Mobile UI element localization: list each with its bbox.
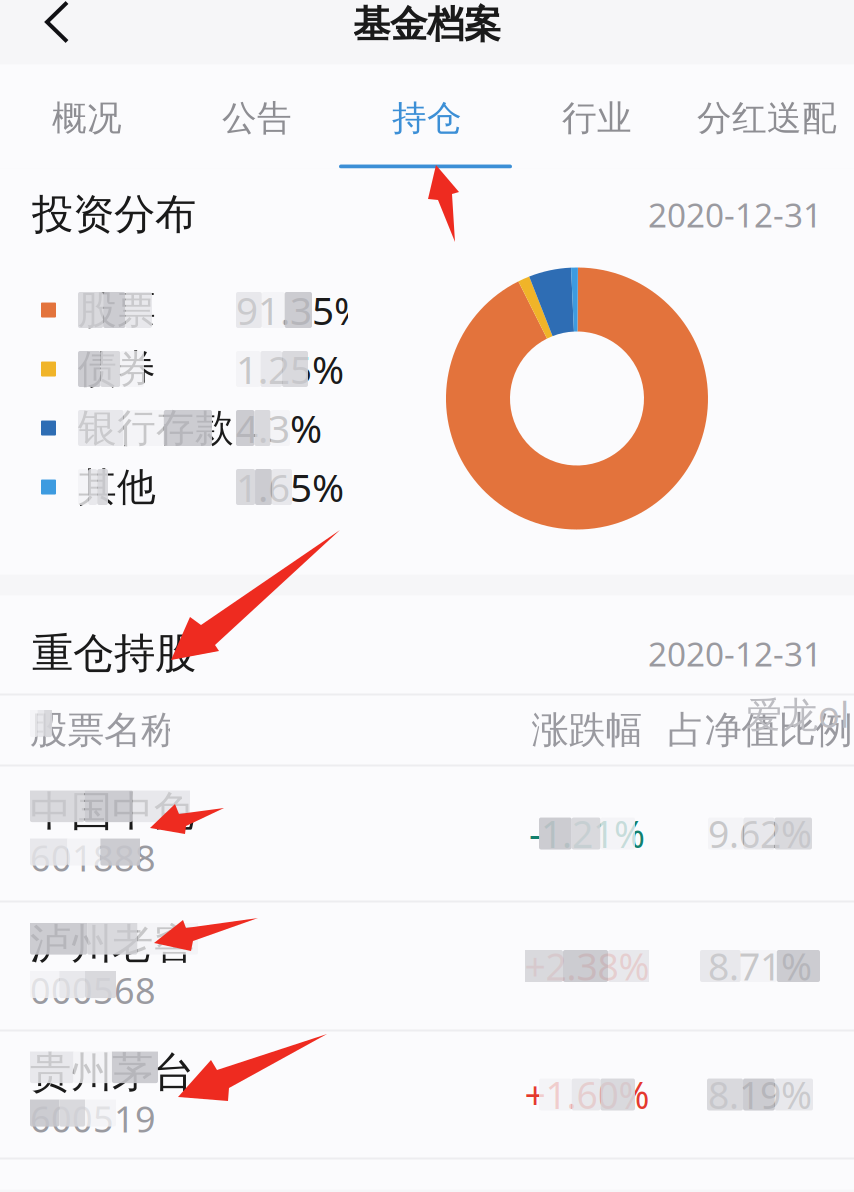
staticText: +2.38% bbox=[524, 941, 649, 991]
button[interactable]: 分红送配 bbox=[682, 64, 852, 168]
staticText: 概况 bbox=[52, 97, 122, 139]
staticText: 占净值比例 bbox=[667, 707, 852, 753]
staticText: 4.3% bbox=[236, 402, 322, 454]
staticText: 股票名称 bbox=[30, 707, 178, 753]
staticText: 债券 bbox=[78, 345, 156, 393]
staticText: 000568 bbox=[30, 966, 156, 1014]
button[interactable]: 中国中免 bbox=[0, 766, 854, 902]
button[interactable]: 泸州老窖 bbox=[0, 902, 854, 1031]
staticText: 8.19% bbox=[708, 1070, 812, 1119]
staticText: 公告 bbox=[222, 97, 292, 139]
staticText: 分红送配 bbox=[697, 97, 837, 139]
staticText: 股票 bbox=[78, 286, 156, 334]
button[interactable]: 持仓 bbox=[342, 64, 512, 168]
button[interactable]: 行业 bbox=[512, 64, 682, 168]
staticText: +1.60% bbox=[524, 1070, 649, 1119]
staticText: 中国中免 bbox=[30, 786, 194, 837]
staticText: 行业 bbox=[562, 97, 632, 139]
staticText: 2020-12-31 bbox=[648, 631, 822, 676]
staticText: 601888 bbox=[30, 834, 156, 881]
staticText: 600519 bbox=[30, 1095, 156, 1142]
staticText: 2020-12-31 bbox=[648, 192, 822, 237]
button[interactable]: 公告 bbox=[172, 64, 342, 168]
staticText: 贵州茅台 bbox=[30, 1047, 194, 1098]
button[interactable]: Back bbox=[0, 0, 96, 63]
staticText: 8.71% bbox=[708, 941, 812, 991]
staticText: 9.62% bbox=[708, 809, 812, 858]
staticText: 基金档案 bbox=[353, 2, 501, 47]
staticText: 银行存款 bbox=[78, 404, 234, 452]
staticText: 持仓 bbox=[392, 97, 462, 139]
staticText: 1.25% bbox=[236, 343, 344, 395]
staticText: 重仓持股 bbox=[32, 628, 196, 679]
button[interactable]: 贵州茅台 bbox=[0, 1031, 854, 1159]
staticText: 1.65% bbox=[236, 461, 344, 513]
staticText: -1.21% bbox=[529, 809, 645, 858]
button[interactable]: 概况 bbox=[2, 64, 172, 168]
staticText: 投资分布 bbox=[32, 189, 196, 240]
staticText: 其他 bbox=[78, 463, 156, 511]
staticText: 91.35% bbox=[236, 284, 366, 336]
staticText: 泸州老窖 bbox=[30, 919, 194, 969]
staticText: 涨跌幅 bbox=[531, 707, 642, 753]
staticText: 爱龙ol bbox=[746, 690, 849, 738]
